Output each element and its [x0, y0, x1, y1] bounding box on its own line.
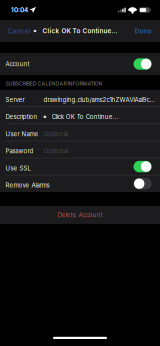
button[interactable]: Use SSL: [0, 158, 160, 175]
staticText: Account: [6, 60, 30, 68]
staticText: User Name: [6, 130, 39, 138]
button[interactable]: User Name: [0, 124, 160, 141]
staticText: Click OK To Continue...: [42, 27, 117, 35]
staticText: Click OK To Continue...: [52, 113, 119, 120]
button[interactable]: Password: [0, 141, 160, 158]
button[interactable]: Description: [0, 107, 160, 124]
staticText: drawinging.club/ams2c1hZWAViAal9cBkN…: [44, 96, 156, 103]
staticText: Server: [6, 96, 25, 103]
staticText: Delete Account: [57, 211, 102, 219]
staticText: Description: [6, 113, 38, 120]
button[interactable]: Server: [0, 90, 160, 106]
staticText: Password: [6, 147, 34, 155]
staticText: Cancel: [7, 27, 30, 35]
staticText: Remove Alarms: [6, 182, 50, 189]
staticText: Optional: [44, 130, 68, 138]
button[interactable]: Delete Account: [0, 206, 160, 224]
button[interactable]: Remove Alarms: [0, 175, 160, 192]
staticText: Optional: [44, 147, 68, 155]
button[interactable]: Done: [135, 22, 160, 40]
staticText: Use SSL: [6, 164, 31, 172]
staticText: Done: [135, 27, 152, 35]
button[interactable]: Account: [0, 53, 160, 75]
button[interactable]: Cancel: [0, 22, 36, 40]
staticText: 10:04: [11, 6, 28, 14]
staticText: SUBSCRIBED CALENDAR INFORMATION: [5, 80, 102, 87]
